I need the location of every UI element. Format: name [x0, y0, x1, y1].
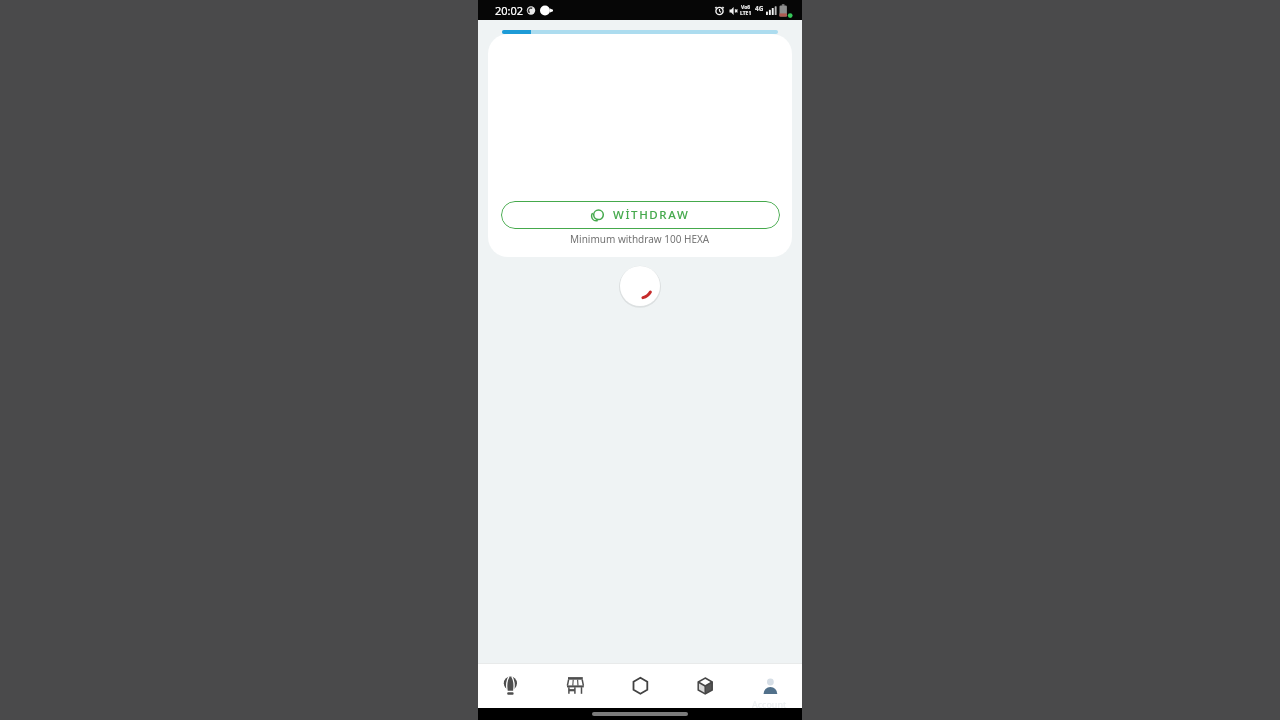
button[interactable]: WİTHDRAW [501, 201, 780, 229]
button[interactable] [673, 663, 738, 708]
staticText: Account [752, 698, 787, 710]
button[interactable] [543, 663, 608, 708]
staticText: 4G [755, 4, 764, 13]
staticText: WİTHDRAW [613, 207, 690, 223]
staticText: Vo6 [741, 4, 751, 11]
button[interactable] [738, 663, 802, 708]
button[interactable] [478, 663, 543, 708]
staticText: Minimum withdraw 100 HEXA [570, 232, 710, 246]
button[interactable] [608, 663, 673, 708]
staticText: LTE1 [740, 10, 752, 17]
staticText: 20:02 [495, 3, 524, 18]
